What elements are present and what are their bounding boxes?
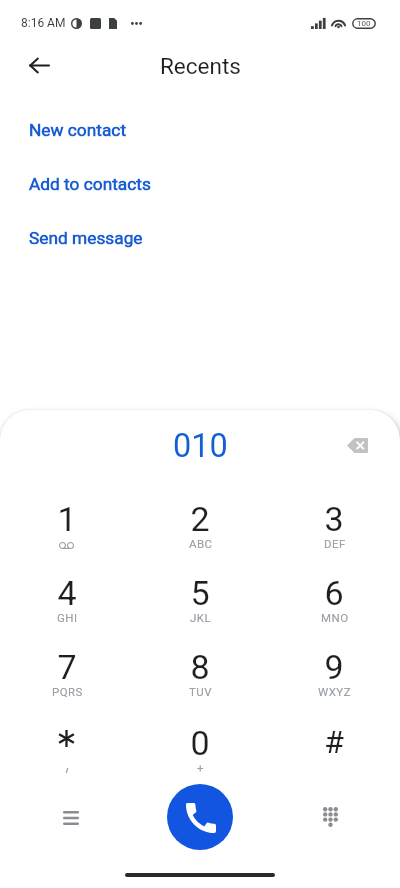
staticText: 6 [324, 573, 344, 613]
button[interactable]: Back [17, 43, 61, 87]
staticText: GHI [57, 611, 78, 624]
staticText: 7 [57, 647, 77, 687]
button[interactable]: Call log [45, 795, 89, 839]
staticText: PQRS [52, 685, 83, 698]
staticText: New contact [29, 120, 127, 140]
staticText: JKL [190, 611, 212, 624]
staticText: 010 [173, 427, 228, 465]
button[interactable]: 7 [0, 633, 133, 707]
button[interactable]: 9 [267, 633, 400, 707]
button[interactable]: New contact [0, 103, 400, 157]
button[interactable]: 5 [133, 559, 266, 633]
staticText: DEF [324, 537, 346, 550]
button[interactable]: 1 [0, 485, 133, 559]
staticText: TUV [189, 685, 212, 698]
staticText: 5 [190, 573, 210, 613]
button[interactable] [0, 709, 133, 783]
button[interactable]: # [267, 709, 400, 783]
staticText: 100 [357, 19, 371, 28]
staticText: + [197, 761, 204, 774]
staticText: Add to contacts [29, 174, 151, 194]
button[interactable]: 6 [267, 559, 400, 633]
staticText: MNO [321, 611, 349, 624]
button[interactable]: Hide keypad [311, 795, 355, 839]
staticText: 8 [190, 647, 210, 687]
staticText: 3 [324, 499, 344, 539]
button[interactable]: 4 [0, 559, 133, 633]
button[interactable]: 0 [133, 709, 266, 783]
staticText: Send message [29, 228, 143, 248]
button[interactable]: 2 [133, 485, 266, 559]
staticText: 1 [57, 499, 77, 539]
staticText: 4 [57, 573, 77, 613]
staticText: 9 [324, 647, 344, 687]
button[interactable]: Send message [0, 211, 400, 265]
staticText: ABC [189, 537, 213, 550]
staticText: 8:16 AM [21, 16, 66, 30]
button[interactable]: 3 [267, 485, 400, 559]
staticText: 2 [190, 499, 210, 539]
button[interactable]: Backspace [335, 423, 379, 467]
button[interactable]: Add to contacts [0, 157, 400, 211]
staticText: # [324, 723, 344, 761]
staticText: WXYZ [318, 685, 352, 698]
staticText: 0 [190, 723, 210, 763]
button[interactable]: 8 [133, 633, 266, 707]
staticText: Recents [160, 53, 241, 79]
button[interactable]: Call [167, 784, 233, 850]
